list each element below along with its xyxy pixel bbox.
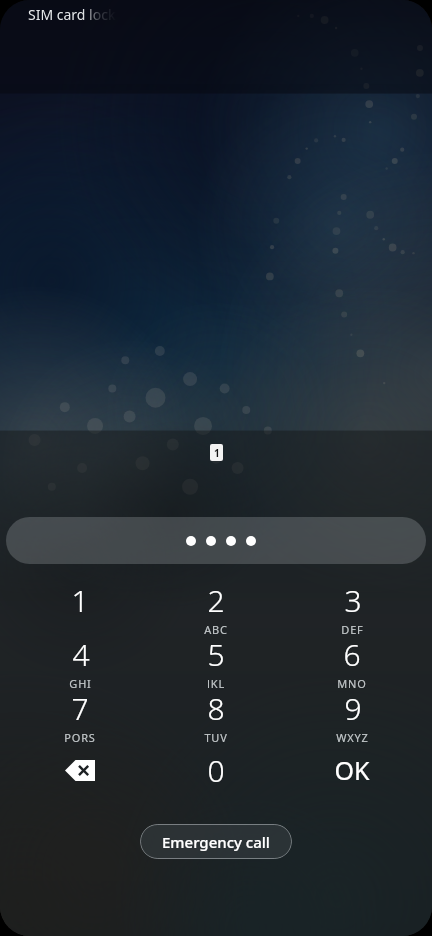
button[interactable]: Key 6 xyxy=(284,634,420,688)
staticText: 7 xyxy=(71,688,89,729)
staticText: 6 xyxy=(343,634,361,675)
staticText: DEF xyxy=(341,622,364,634)
button[interactable]: PIN entry field xyxy=(6,517,426,564)
staticText: Emergency call xyxy=(162,832,270,852)
staticText: TUV xyxy=(204,730,228,742)
button[interactable]: Key 5 xyxy=(148,634,284,688)
staticText: 3 xyxy=(344,580,362,621)
button[interactable]: Key 1 xyxy=(12,580,148,634)
button[interactable]: Key 3 xyxy=(284,580,420,634)
staticText: SIM card lock xyxy=(28,5,116,24)
staticText: PQRS xyxy=(64,730,96,742)
button[interactable]: Key 2 xyxy=(148,580,284,634)
button[interactable]: Key 8 xyxy=(148,688,284,742)
staticText: 1 xyxy=(214,446,220,460)
staticText: JKL xyxy=(207,676,225,688)
staticText: 1 xyxy=(71,580,89,621)
button[interactable]: Key 0 xyxy=(148,742,284,798)
staticText: 5 xyxy=(207,634,225,675)
button[interactable]: Key 7 xyxy=(12,688,148,742)
staticText: 0 xyxy=(207,750,225,791)
button[interactable]: Backspace xyxy=(12,742,148,798)
button[interactable]: Emergency call xyxy=(140,824,292,859)
button[interactable]: OK xyxy=(284,742,420,798)
staticText: WXYZ xyxy=(336,730,369,742)
staticText: 2 xyxy=(207,580,225,621)
staticText: OK xyxy=(334,753,370,787)
staticText: GHI xyxy=(69,676,92,688)
button[interactable]: Key 4 xyxy=(12,634,148,688)
staticText: 8 xyxy=(207,688,225,729)
button[interactable]: Key 9 xyxy=(284,688,420,742)
staticText: 9 xyxy=(344,688,362,729)
staticText: ABC xyxy=(204,622,228,634)
staticText: MNO xyxy=(337,676,367,688)
staticText: 4 xyxy=(72,634,90,675)
